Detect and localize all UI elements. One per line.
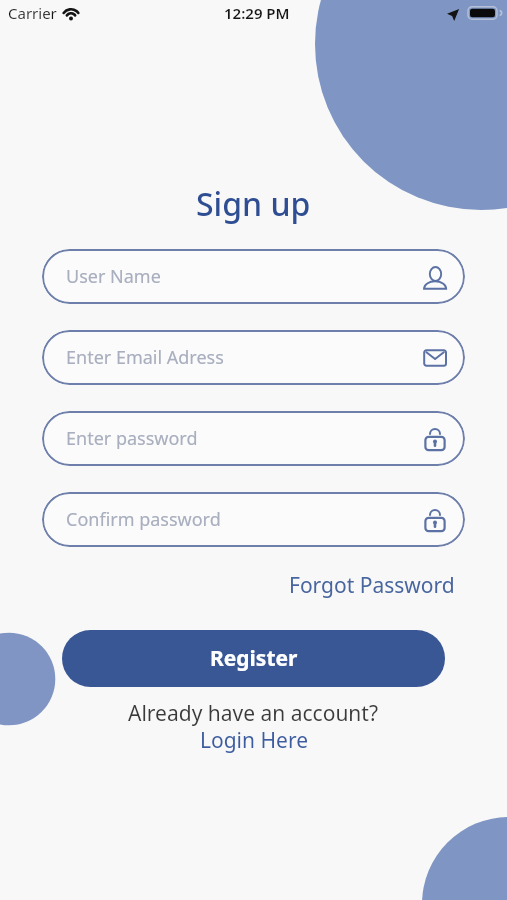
staticText: Enter password (66, 426, 198, 451)
button[interactable]: Login Here (200, 726, 308, 755)
button[interactable]: Forgot Password (289, 571, 455, 600)
staticText: Forgot Password (289, 571, 455, 600)
button[interactable]: Confirm password (42, 492, 465, 547)
staticText: Already have an account? (128, 699, 379, 728)
staticText: User Name (66, 264, 161, 289)
button[interactable]: Enter password (42, 411, 465, 466)
staticText: 12:29 PM (224, 3, 290, 23)
staticText: Carrier (8, 3, 57, 23)
button[interactable]: User Name (42, 249, 465, 304)
staticText: Confirm password (66, 507, 221, 532)
staticText: Enter Email Adress (66, 345, 224, 370)
button[interactable]: Enter Email Adress (42, 330, 465, 385)
staticText: Register (210, 644, 298, 673)
button[interactable]: Register (62, 630, 445, 687)
staticText: Login Here (200, 726, 308, 755)
staticText: Sign up (196, 182, 311, 226)
